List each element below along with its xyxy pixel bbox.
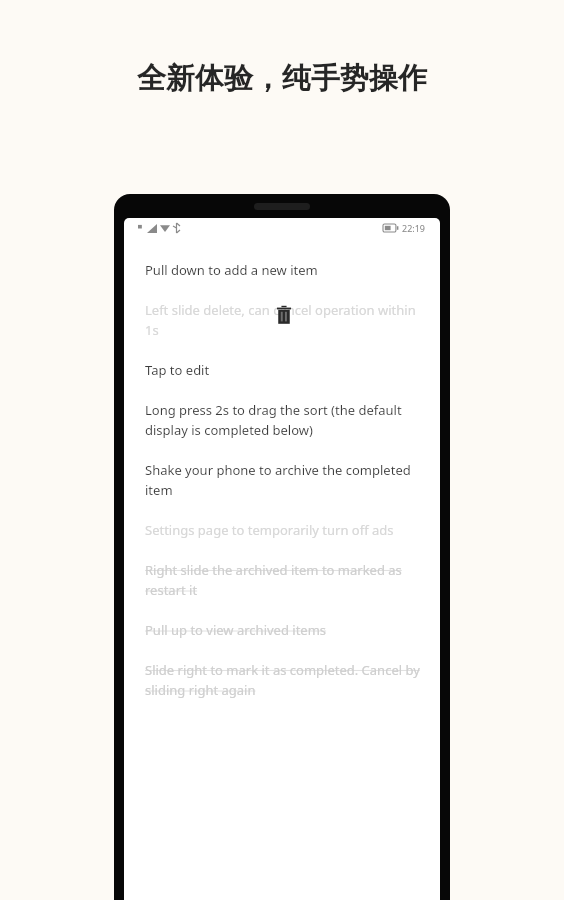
staticText: Settings page to temporarily turn off ad… xyxy=(145,521,394,539)
staticText: Shake your phone to archive the complete… xyxy=(145,461,420,499)
staticText: Pull down to add a new item xyxy=(145,261,318,279)
button[interactable]: Settings page to temporarily turn off ad… xyxy=(124,510,440,550)
button[interactable]: Shake your phone to archive the complete… xyxy=(124,450,440,510)
staticText: Pull up to view archived items xyxy=(145,621,327,639)
button[interactable]: Slide right to mark it as completed. Can… xyxy=(124,650,440,710)
staticText: 全新体验，纯手势操作 xyxy=(137,60,427,97)
button[interactable]: Tap to edit xyxy=(124,350,440,390)
button[interactable]: Right slide the archived item to marked … xyxy=(124,550,440,610)
staticText: 22:19 xyxy=(402,222,426,234)
button[interactable]: Long press 2s to drag the sort (the defa… xyxy=(124,390,440,450)
staticText: Tap to edit xyxy=(145,361,210,379)
staticText: Right slide the archived item to marked … xyxy=(145,561,420,599)
button[interactable]: Left slide delete, can cancel operation … xyxy=(124,290,440,350)
button[interactable]: Pull up to view archived items xyxy=(124,610,440,650)
button[interactable]: Pull down to add a new item xyxy=(124,250,440,290)
staticText: Left slide delete, can cancel operation … xyxy=(145,301,420,339)
button[interactable]: Delete xyxy=(276,305,292,325)
staticText: Long press 2s to drag the sort (the defa… xyxy=(145,401,420,439)
staticText: Slide right to mark it as completed. Can… xyxy=(145,661,420,699)
